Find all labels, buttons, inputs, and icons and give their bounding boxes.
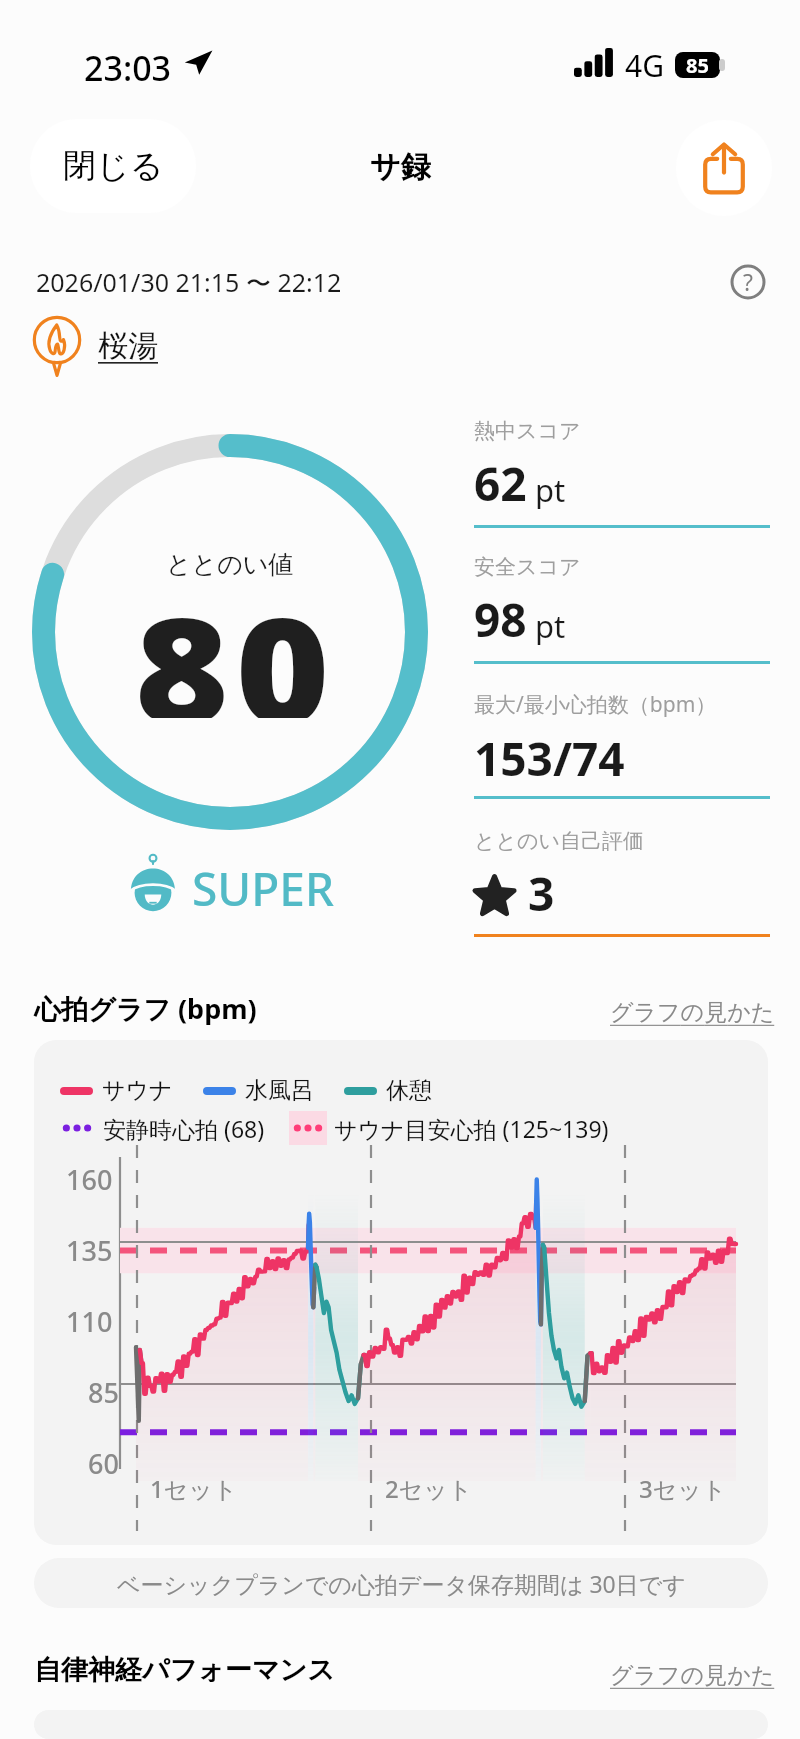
staticText: pt [535,469,566,511]
button[interactable]: グラフの見かた [610,1661,775,1690]
button[interactable]: 桜湯 [30,316,158,376]
staticText: ? [743,266,753,297]
button[interactable]: ととのい自己評価 [474,828,770,927]
staticText: 85 [686,52,709,78]
staticText: 153/74 [474,727,625,790]
staticText: 160 [66,1161,113,1198]
staticText: 85 [88,1374,119,1411]
staticText: 3 [528,862,555,925]
staticText: 自律神経パフォーマンス [34,1653,335,1687]
staticText: サウナ目安心拍 (125~139) [334,1113,609,1144]
button[interactable]: 最大/最小心拍数（bpm） [474,690,784,790]
staticText: 23:03 [84,45,172,91]
staticText: 熱中スコア [474,418,581,444]
button[interactable]: 安全スコア [474,554,784,651]
staticText: 閉じる [63,145,164,187]
staticText: 安全スコア [474,554,581,580]
staticText: 80 [135,568,336,718]
staticText: pt [535,605,566,647]
staticText: SUPER [192,857,335,920]
staticText: 4G [625,45,664,86]
button[interactable]: Help [730,264,766,300]
staticText: 安静時心拍 (68) [103,1113,265,1144]
staticText: サウナ [102,1076,173,1105]
button[interactable]: 熱中スコア [474,418,784,515]
staticText: ととのい自己評価 [474,828,644,854]
staticText: 桜湯 [98,327,158,365]
staticText: サ録 [370,148,431,186]
staticText: 2026/01/30 21:15 〜 22:12 [36,265,342,299]
staticText: 2セット [385,1472,473,1505]
staticText: 1セット [150,1472,238,1505]
button[interactable]: 閉じる [30,119,196,213]
staticText: 心拍グラフ (bpm) [34,990,257,1027]
staticText: 休憩 [386,1076,432,1105]
button[interactable]: Share [676,120,772,216]
staticText: ベーシックプランでの心拍データ保存期間は 30日です [117,1568,686,1599]
staticText: 110 [66,1303,113,1340]
staticText: 62 [474,452,527,515]
staticText: ととのい値 [166,549,294,580]
staticText: 3セット [639,1472,727,1505]
staticText: 60 [88,1445,119,1482]
staticText: 135 [66,1232,113,1269]
staticText: 最大/最小心拍数（bpm） [474,690,717,719]
staticText: 98 [474,588,527,651]
button[interactable]: グラフの見かた [610,998,775,1027]
staticText: 水風呂 [245,1076,314,1105]
